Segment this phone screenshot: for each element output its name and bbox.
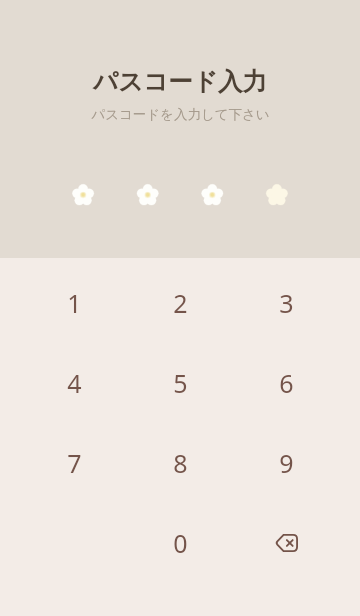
staticText: 2	[173, 286, 188, 320]
button[interactable]: 1	[21, 263, 127, 343]
button[interactable]: 3	[233, 263, 339, 343]
button[interactable]: 7	[21, 423, 127, 503]
staticText: 1	[67, 286, 82, 320]
staticText: 3	[279, 286, 294, 320]
staticText: パスコード入力	[93, 66, 267, 97]
button[interactable]: 4	[21, 343, 127, 423]
button[interactable]: 9	[233, 423, 339, 503]
staticText: 5	[173, 366, 188, 400]
button[interactable]: 5	[127, 343, 233, 423]
staticText: 0	[173, 526, 188, 560]
staticText: 7	[67, 446, 82, 480]
button[interactable]: 2	[127, 263, 233, 343]
staticText: パスコードを入力して下さい	[91, 106, 270, 123]
button[interactable]: 0	[127, 503, 233, 583]
button[interactable]: 6	[233, 343, 339, 423]
button[interactable]: Delete	[233, 503, 339, 583]
staticText: 9	[279, 446, 294, 480]
button[interactable]: 8	[127, 423, 233, 503]
staticText: 8	[173, 446, 188, 480]
staticText: 4	[67, 366, 82, 400]
staticText: 6	[279, 366, 294, 400]
